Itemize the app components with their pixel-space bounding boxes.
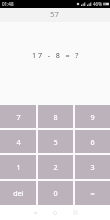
button[interactable]: 7 [0, 105, 36, 128]
button[interactable]: 6 [75, 130, 110, 153]
button[interactable]: del [0, 181, 36, 205]
button[interactable]: Home [44, 205, 66, 220]
staticText: del [13, 188, 24, 198]
staticText: 46% [93, 1, 102, 7]
button[interactable]: 2 [38, 155, 73, 179]
button[interactable]: = [75, 181, 110, 205]
staticText: 01:48 [2, 1, 14, 7]
button[interactable]: 9 [75, 105, 110, 128]
button[interactable]: 5 [38, 130, 73, 153]
staticText: 4 [16, 137, 21, 147]
staticText: 6 [90, 137, 95, 147]
button[interactable]: 8 [38, 105, 73, 128]
staticText: = [90, 188, 95, 198]
button[interactable]: 0 [38, 181, 73, 205]
button[interactable]: 1 [0, 155, 36, 179]
staticText: 1 [16, 162, 21, 172]
staticText: 0 [53, 188, 58, 198]
staticText: 57 [50, 9, 59, 20]
staticText: 8 [53, 112, 58, 122]
staticText: 3 [90, 162, 95, 172]
staticText: 17 - 8 = ? [32, 50, 81, 60]
staticText: 2 [53, 162, 58, 172]
staticText: 5 [53, 137, 58, 147]
staticText: 7 [16, 112, 21, 122]
button[interactable]: 3 [75, 155, 110, 179]
button[interactable]: 4 [0, 130, 36, 153]
staticText: 9 [90, 112, 95, 122]
